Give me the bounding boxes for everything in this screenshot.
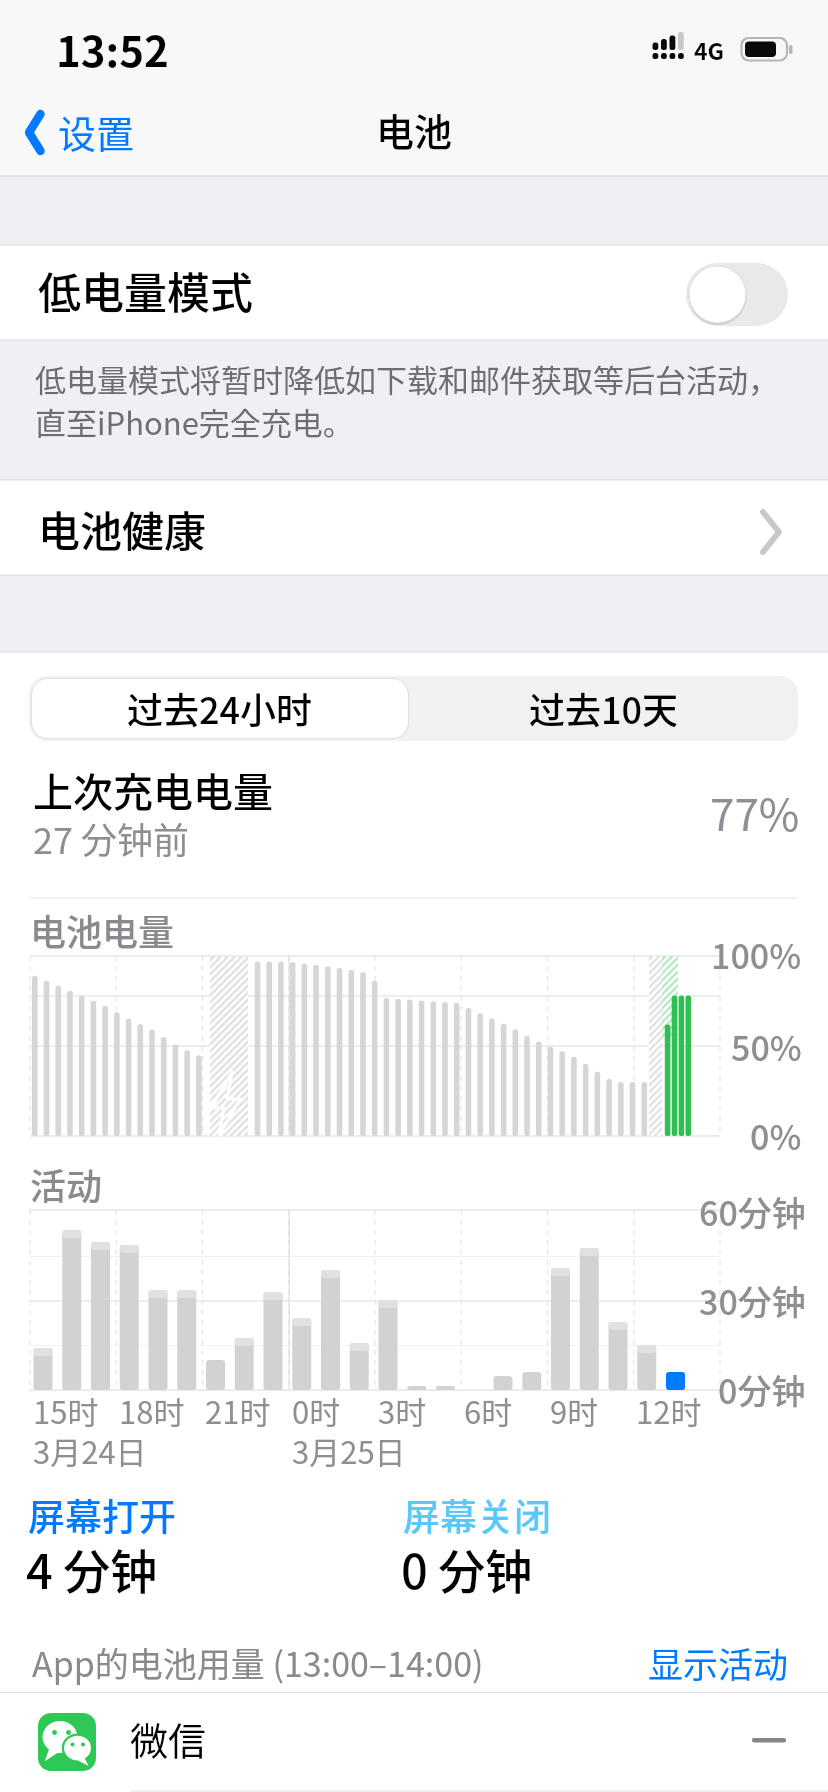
staticText: 3月25日	[292, 1428, 406, 1473]
staticText: 低电量模式	[38, 259, 253, 321]
staticText: 4G	[694, 33, 725, 66]
staticText: 电池健康	[38, 498, 207, 559]
staticText: 电池电量	[30, 904, 175, 956]
staticText: 屏幕打开	[28, 1488, 176, 1542]
staticText: 100%	[711, 930, 802, 979]
button[interactable]	[640, 1635, 800, 1695]
staticText: 27 分钟前	[33, 812, 190, 864]
staticText: 过去10天	[529, 682, 679, 734]
staticText: 6时	[464, 1388, 513, 1433]
staticText: 77%	[710, 780, 800, 844]
staticText: App的电池用量 (13:00–14:00)	[32, 1638, 484, 1687]
staticText: 18时	[119, 1388, 185, 1433]
button[interactable]	[0, 1693, 828, 1792]
staticText: 微信	[130, 1711, 207, 1766]
staticText: 13:52	[56, 18, 169, 79]
staticText: 0%	[750, 1111, 802, 1160]
button[interactable]	[0, 481, 828, 574]
staticText: 12时	[636, 1388, 702, 1433]
staticText: 21时	[205, 1388, 271, 1433]
staticText: 9时	[550, 1388, 599, 1433]
button[interactable]	[31, 678, 409, 739]
staticText: 30分钟	[699, 1276, 806, 1325]
staticText: 低电量模式将暂时降低如下载和邮件获取等后台活动，	[35, 356, 779, 401]
staticText: 60分钟	[699, 1187, 806, 1236]
staticText: 过去24小时	[127, 682, 313, 734]
button[interactable]	[409, 678, 796, 739]
staticText: 4 分钟	[26, 1534, 158, 1602]
staticText: 活动	[30, 1158, 103, 1210]
staticText: 0时	[292, 1388, 341, 1433]
staticText: 电池	[376, 102, 453, 157]
button[interactable]	[20, 100, 150, 160]
staticText: 15时	[33, 1388, 99, 1433]
staticText: 上次充电电量	[33, 761, 273, 819]
staticText: 3月24日	[33, 1428, 147, 1473]
staticText: 屏幕关闭	[403, 1488, 551, 1542]
button[interactable]	[686, 263, 788, 326]
staticText: 3时	[378, 1388, 427, 1433]
staticText: 显示活动	[648, 1637, 789, 1688]
staticText: 设置	[58, 104, 135, 159]
staticText: 0 分钟	[401, 1534, 533, 1602]
staticText: 0分钟	[718, 1365, 806, 1414]
staticText: 直至iPhone完全充电。	[35, 399, 354, 444]
staticText: 50%	[731, 1022, 802, 1071]
